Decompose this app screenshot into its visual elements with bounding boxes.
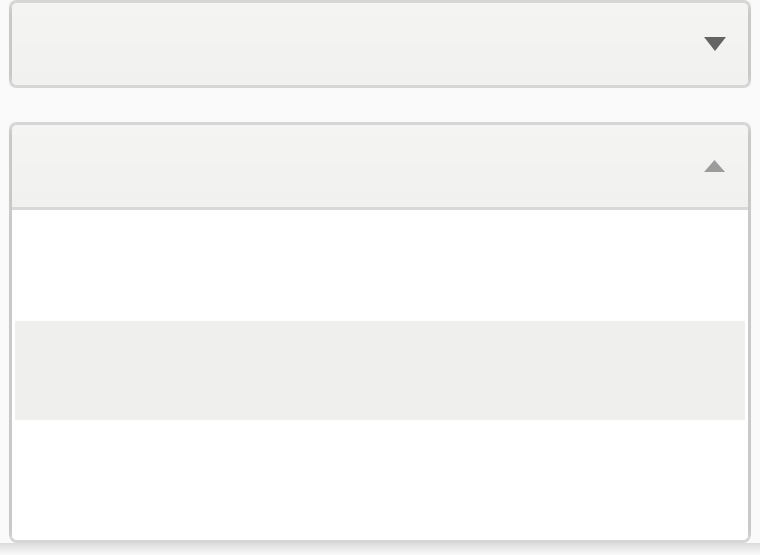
button[interactable]: Expand section xyxy=(693,22,737,66)
button[interactable] xyxy=(9,210,751,321)
button[interactable]: Collapse section xyxy=(692,144,736,188)
button[interactable]: Collapse section xyxy=(9,122,751,207)
button[interactable]: Expand section xyxy=(9,0,751,88)
button[interactable] xyxy=(9,420,751,543)
